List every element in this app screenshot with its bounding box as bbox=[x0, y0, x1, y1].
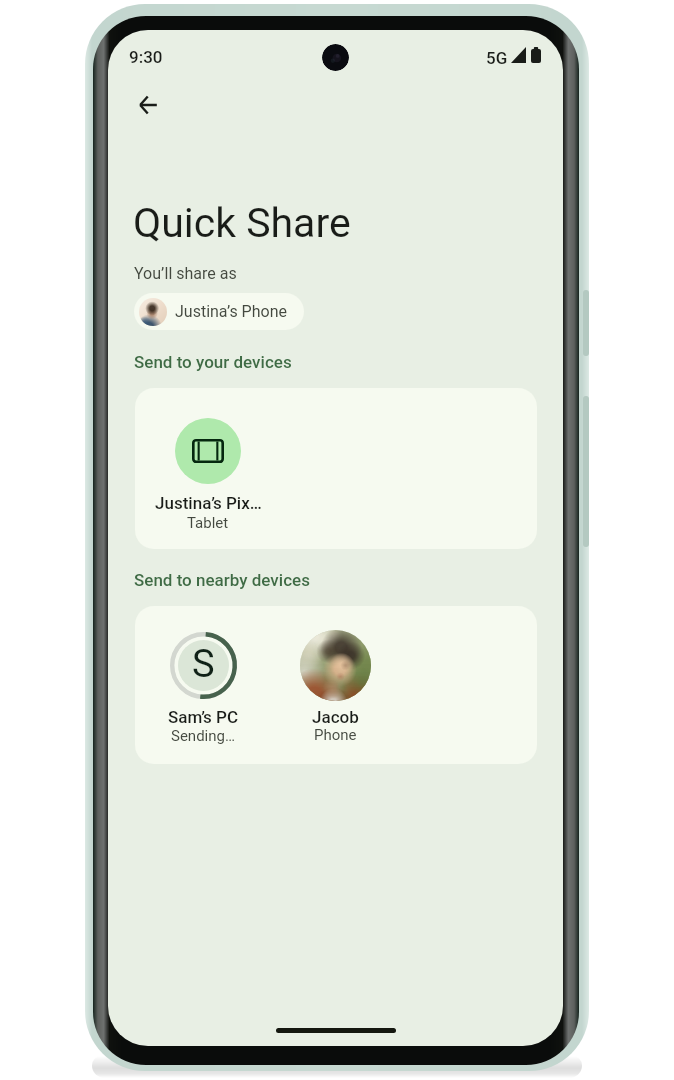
staticText: 9:30 bbox=[129, 47, 163, 67]
staticText: Tablet bbox=[187, 514, 229, 532]
button[interactable]: Justina’s Pix… bbox=[148, 396, 268, 541]
staticText: Justina’s Pix… bbox=[155, 493, 262, 513]
staticText: Send to nearby devices bbox=[134, 570, 310, 590]
staticText: Sending… bbox=[171, 727, 235, 745]
staticText: Send to your devices bbox=[134, 352, 292, 372]
staticText: You’ll share as bbox=[134, 264, 237, 283]
button[interactable]: Back bbox=[124, 81, 172, 129]
staticText: 5G bbox=[486, 48, 508, 68]
staticText: Justina’s Phone bbox=[175, 302, 287, 321]
staticText: Quick Share bbox=[133, 199, 351, 247]
staticText: Sam’s PC bbox=[168, 707, 239, 727]
staticText: S bbox=[192, 642, 215, 687]
button[interactable]: Justina’s Phone bbox=[134, 293, 304, 330]
staticText: Phone bbox=[314, 726, 357, 744]
button[interactable]: S bbox=[143, 612, 263, 757]
button[interactable]: Jacob bbox=[275, 612, 395, 757]
staticText: Jacob bbox=[312, 707, 359, 727]
